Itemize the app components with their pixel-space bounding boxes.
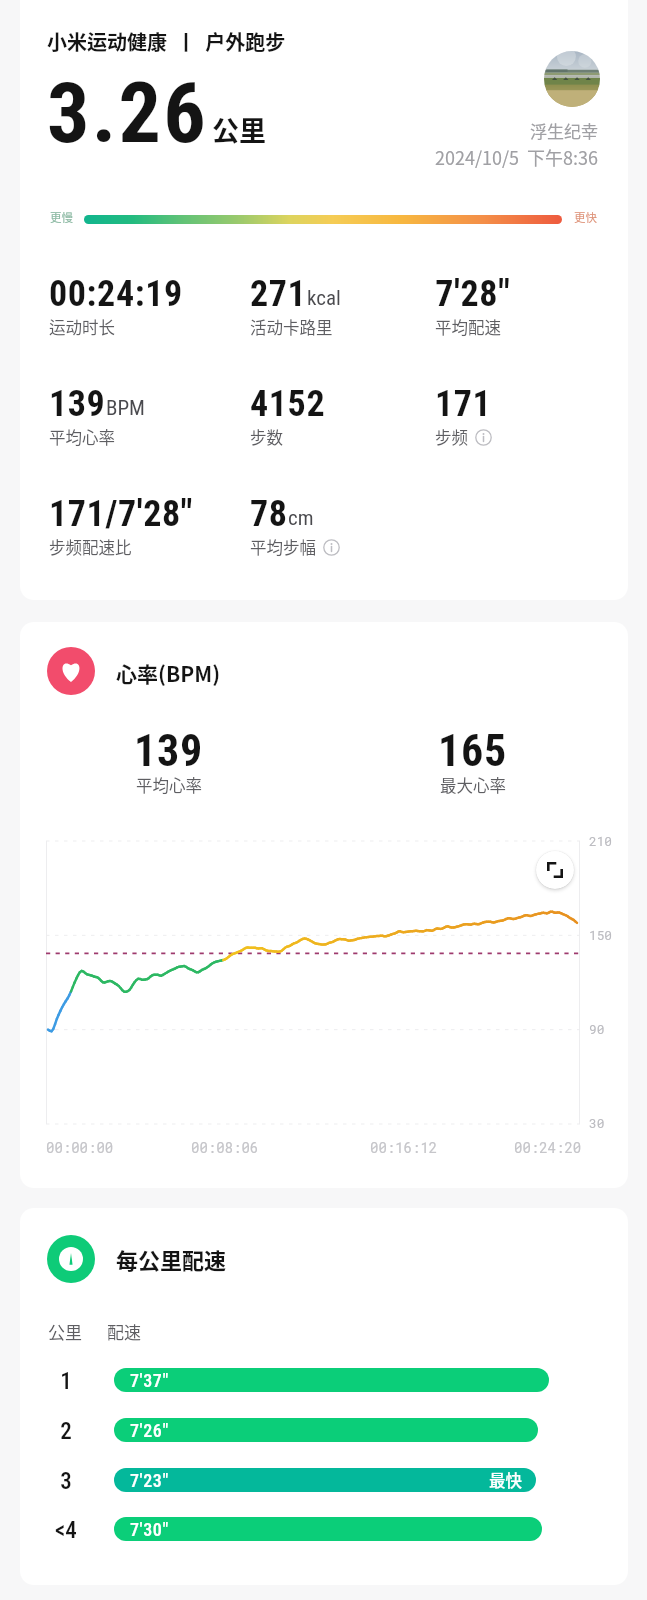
staticText: 小米运动健康 丨 户外跑步	[47, 27, 286, 56]
staticText: 3.26	[47, 64, 209, 162]
staticText: 1	[41, 1368, 91, 1392]
button[interactable]: Profile photo	[544, 51, 600, 107]
button[interactable]: <4	[20, 1517, 628, 1541]
staticText: 30	[589, 1115, 605, 1132]
staticText: 最快	[489, 1468, 522, 1492]
staticText: 3	[41, 1468, 91, 1492]
staticText: 7'23"	[130, 1470, 169, 1491]
staticText: 00:00:00	[46, 1138, 114, 1156]
staticText: 步频配速比	[49, 535, 132, 559]
staticText: 210	[589, 833, 613, 850]
button[interactable]: More info	[475, 429, 492, 446]
staticText: 心率(BPM)	[116, 658, 221, 688]
staticText: cm	[288, 506, 314, 531]
staticText: 更快	[574, 209, 597, 226]
staticText: 浮生纪幸	[418, 118, 598, 143]
staticText: 平均配速	[435, 315, 501, 339]
staticText: 步频	[435, 425, 468, 449]
staticText: 00:24:20	[514, 1138, 582, 1156]
staticText: 165	[438, 725, 508, 777]
staticText: 139	[49, 383, 106, 425]
staticText: 公里	[48, 1319, 82, 1344]
staticText: 每公里配速	[116, 1243, 227, 1275]
staticText: 最大心率	[440, 773, 506, 797]
button[interactable]: 3	[20, 1468, 628, 1492]
staticText: 运动时长	[49, 315, 115, 339]
button[interactable]: Expand chart	[536, 851, 574, 889]
staticText: 90	[589, 1021, 605, 1038]
button[interactable]: More info	[323, 539, 340, 556]
staticText: 171/7'28"	[49, 493, 193, 535]
staticText: 2	[41, 1418, 91, 1442]
staticText: 7'30"	[130, 1519, 169, 1540]
staticText: 171	[435, 383, 492, 425]
staticText: 7'26"	[130, 1420, 169, 1441]
button[interactable]: 2	[20, 1418, 628, 1442]
staticText: 78	[250, 493, 288, 535]
staticText: 步数	[250, 425, 283, 449]
staticText: 公里	[212, 110, 266, 149]
staticText: 配速	[107, 1319, 141, 1344]
staticText: 平均步幅	[250, 535, 316, 559]
staticText: 7'28"	[435, 273, 510, 315]
staticText: kcal	[307, 286, 341, 311]
staticText: 活动卡路里	[250, 315, 333, 339]
staticText: 平均心率	[49, 425, 115, 449]
staticText: 150	[589, 927, 613, 944]
staticText: 00:08:06	[191, 1138, 259, 1156]
staticText: BPM	[106, 396, 145, 421]
staticText: 00:24:19	[49, 273, 183, 315]
staticText: 7'37"	[130, 1370, 169, 1391]
staticText: 4152	[250, 383, 326, 425]
staticText: 00:16:12	[370, 1138, 438, 1156]
staticText: 271	[250, 273, 307, 315]
button[interactable]: 1	[20, 1368, 628, 1392]
staticText: 139	[134, 725, 204, 777]
button[interactable]: Pace	[47, 1235, 95, 1283]
staticText: 2024/10/5 下午8:36	[358, 144, 598, 170]
button[interactable]: Heart rate	[47, 647, 95, 695]
staticText: 平均心率	[136, 773, 202, 797]
staticText: <4	[41, 1517, 91, 1541]
staticText: 更慢	[50, 209, 73, 226]
